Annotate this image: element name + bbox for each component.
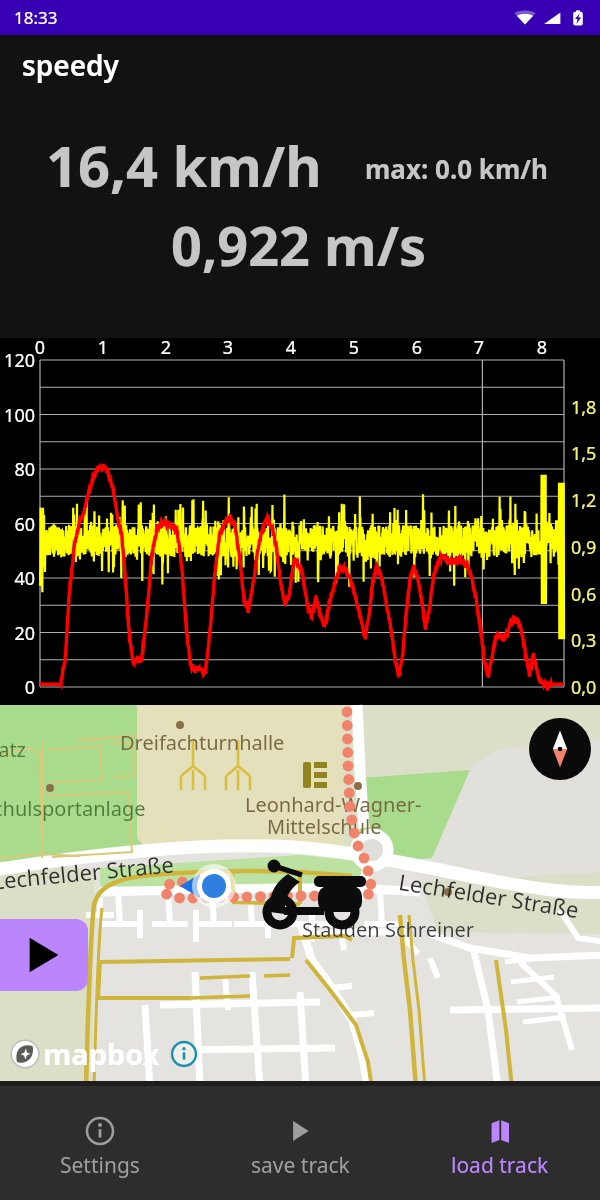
staticText: 120 (0, 348, 35, 373)
staticText: 7 (463, 335, 495, 360)
staticText: latz (0, 736, 26, 763)
staticText: 100 (0, 403, 35, 428)
staticText: max: 0.0 km/h (365, 151, 548, 186)
staticText: 16,4 km/h (46, 127, 322, 203)
button[interactable]: load track (400, 1086, 600, 1200)
button[interactable]: save track (200, 1086, 400, 1200)
staticText: 80 (0, 457, 35, 482)
staticText: save track (251, 1151, 350, 1180)
staticText: speedy (22, 46, 119, 84)
button[interactable]: Settings (0, 1086, 200, 1200)
staticText: 0,6 (571, 582, 597, 607)
staticText: 40 (0, 566, 35, 591)
staticText: 1 (87, 335, 119, 360)
staticText: Dreifachturnhalle (120, 729, 285, 756)
staticText: 5 (338, 335, 370, 360)
staticText: chulsportanlage (0, 795, 146, 822)
staticText: 2 (150, 335, 182, 360)
staticText: 1,8 (571, 395, 597, 420)
staticText: 0,0 (571, 675, 597, 700)
staticText: Settings (60, 1151, 140, 1180)
staticText: 0,9 (571, 535, 597, 560)
staticText: 8 (526, 335, 558, 360)
button[interactable]: Compass (529, 718, 591, 780)
staticText: 0,3 (571, 628, 597, 653)
staticText: mapbox (43, 1034, 160, 1073)
button[interactable]: Start tracking (0, 919, 88, 991)
staticText: Mittelschule (267, 813, 382, 840)
staticText: 1,2 (571, 488, 597, 513)
staticText: Lechfelder Straße (0, 848, 175, 896)
staticText: 3 (212, 335, 244, 360)
staticText: 0 (0, 675, 35, 700)
staticText: 0 (24, 335, 56, 360)
staticText: load track (451, 1151, 549, 1180)
staticText: 0,922 m/s (171, 208, 427, 282)
staticText: Stauden Schreiner (302, 916, 475, 943)
staticText: Leonhard-Wagner- (245, 791, 422, 818)
staticText: 1,5 (571, 441, 597, 466)
staticText: 18:33 (14, 6, 58, 29)
staticText: 20 (0, 621, 35, 646)
staticText: 6 (401, 335, 433, 360)
staticText: 4 (275, 335, 307, 360)
staticText: 60 (0, 512, 35, 537)
staticText: Lechfelder Straße (397, 866, 581, 924)
button[interactable]: Mapbox attribution (10, 1034, 197, 1073)
